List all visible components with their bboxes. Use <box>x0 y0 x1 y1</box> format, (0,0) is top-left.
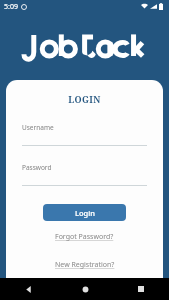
button[interactable]: Forgot Password? <box>51 230 118 244</box>
staticText: Username <box>22 123 54 132</box>
button[interactable]: Recent apps <box>113 278 169 300</box>
button[interactable]: Back <box>0 278 57 300</box>
staticText: New Registration? <box>55 260 115 270</box>
staticText: Forgot Password? <box>55 232 114 242</box>
staticText: Login <box>75 208 95 218</box>
staticText: LOGIN <box>22 93 147 105</box>
staticText: 5:09 <box>4 2 18 12</box>
button[interactable]: New Registration? <box>51 258 119 272</box>
button[interactable]: Home <box>57 278 113 300</box>
button[interactable]: Login <box>43 204 126 221</box>
staticText: Password <box>22 163 52 172</box>
